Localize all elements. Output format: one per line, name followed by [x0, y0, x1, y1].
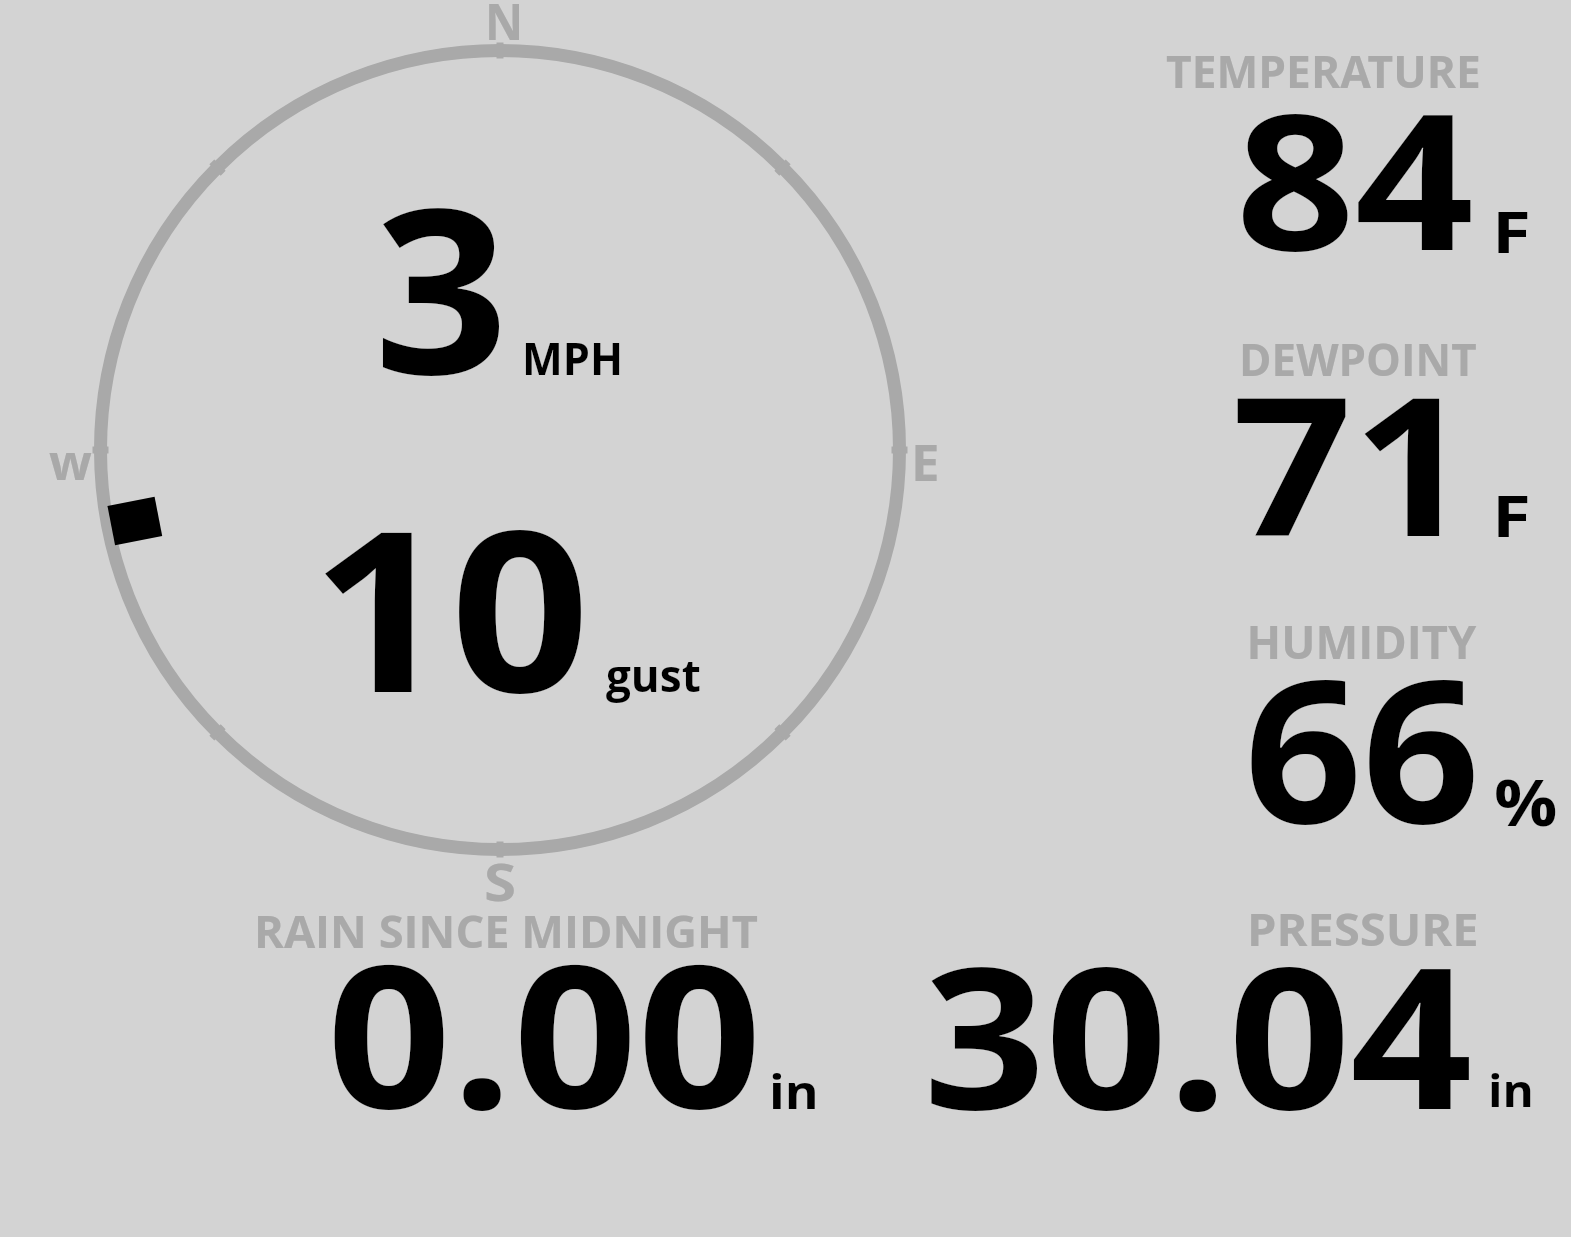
button[interactable]: Humidity 66 percent: [1100, 605, 1571, 855]
button[interactable]: Dew point 71 degrees Fahrenheit: [1100, 320, 1571, 580]
staticText: RAIN SINCE MIDNIGHT: [254, 900, 758, 961]
button[interactable]: Wind 3 miles per hour, gusting 10, from …: [60, 10, 950, 900]
staticText: 3: [374, 130, 509, 440]
button[interactable]: Temperature 84 degrees Fahrenheit: [1100, 40, 1571, 310]
staticText: 30.04: [923, 900, 1473, 1167]
staticText: w: [49, 427, 92, 495]
staticText: MPH: [522, 326, 624, 388]
staticText: S: [484, 845, 516, 916]
button[interactable]: Pressure 30.04 inches: [900, 900, 1540, 1130]
staticText: in: [769, 1059, 820, 1123]
staticText: %: [1494, 758, 1558, 845]
staticText: DEWPOINT: [1239, 328, 1477, 389]
staticText: HUMIDITY: [1246, 610, 1477, 673]
staticText: gust: [606, 644, 701, 705]
staticText: in: [1488, 1059, 1535, 1120]
staticText: N: [485, 0, 523, 55]
staticText: 10: [311, 454, 590, 758]
staticText: 71: [1232, 330, 1473, 593]
staticText: 0.00: [327, 897, 762, 1165]
staticText: 84: [1236, 49, 1474, 305]
staticText: TEMPERATURE: [1166, 40, 1481, 101]
staticText: F: [1492, 475, 1531, 554]
staticText: F: [1492, 191, 1531, 270]
button[interactable]: Rain since midnight 0.00 inches: [240, 900, 840, 1130]
staticText: PRESSURE: [1247, 898, 1479, 959]
staticText: 66: [1244, 612, 1480, 880]
staticText: E: [911, 426, 940, 495]
